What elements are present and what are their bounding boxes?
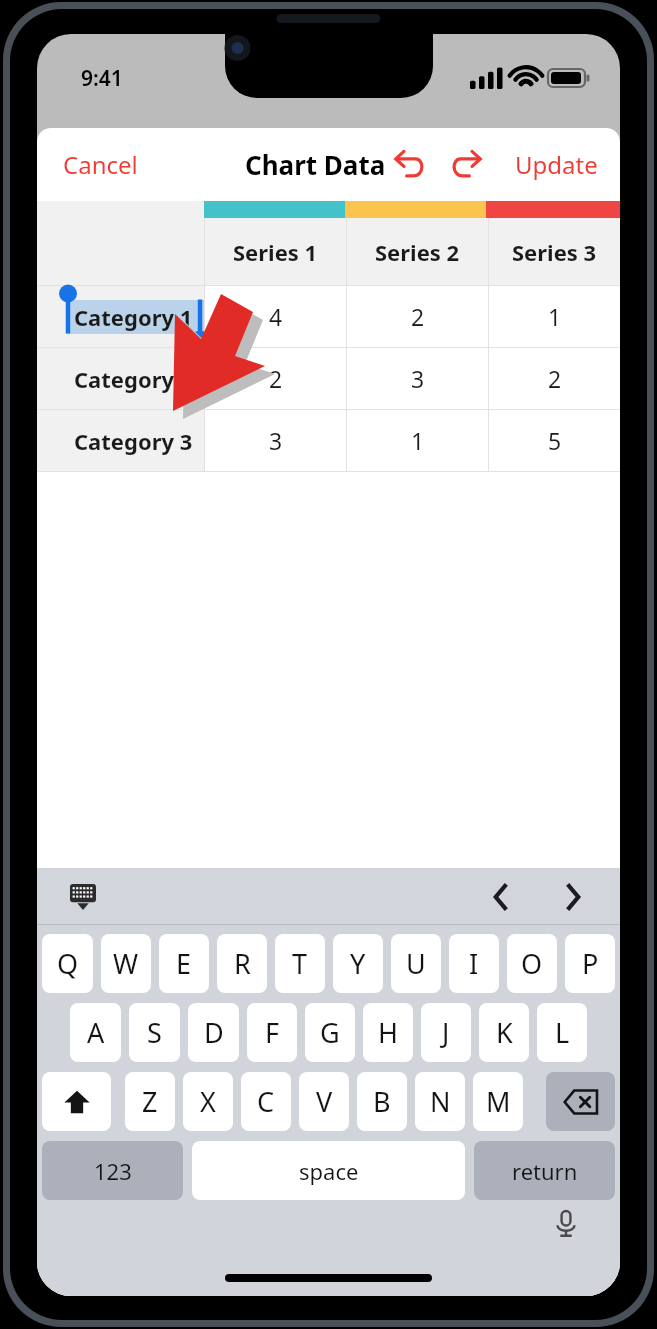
staticText: Cancel: [63, 148, 138, 181]
staticText: 1: [411, 425, 425, 456]
button[interactable]: H: [363, 1003, 413, 1062]
staticText: I: [469, 945, 479, 982]
staticText: W: [113, 945, 139, 982]
button[interactable]: E: [159, 934, 209, 993]
button[interactable]: I: [449, 934, 499, 993]
staticText: space: [299, 1156, 359, 1186]
staticText: V: [316, 1083, 333, 1120]
staticText: Category 3: [74, 426, 193, 456]
button[interactable]: Series 1: [205, 218, 346, 285]
button[interactable]: N: [415, 1072, 465, 1131]
staticText: 1: [548, 301, 562, 332]
staticText: Category 1: [74, 302, 193, 332]
button[interactable]: B: [357, 1072, 407, 1131]
staticText: 5: [548, 425, 562, 456]
button[interactable]: Y: [333, 934, 383, 993]
button[interactable]: U: [391, 934, 441, 993]
button[interactable]: L: [537, 1003, 587, 1062]
button[interactable]: P: [565, 934, 615, 993]
staticText: Chart Data: [245, 147, 386, 182]
staticText: T: [292, 945, 308, 982]
button[interactable]: Dictation: [544, 1202, 588, 1246]
staticText: B: [373, 1083, 391, 1120]
button[interactable]: Category 3: [62, 410, 204, 471]
staticText: H: [378, 1014, 399, 1051]
button[interactable]: space: [192, 1141, 465, 1200]
staticText: D: [204, 1014, 224, 1051]
staticText: Y: [350, 945, 366, 982]
staticText: 2: [411, 301, 425, 332]
button[interactable]: T: [275, 934, 325, 993]
staticText: L: [555, 1014, 570, 1051]
staticText: C: [257, 1083, 275, 1120]
staticText: Series 3: [512, 237, 597, 267]
button[interactable]: 3: [347, 348, 488, 409]
staticText: Category 2: [74, 364, 193, 394]
button[interactable]: Z: [125, 1072, 175, 1131]
staticText: P: [582, 945, 599, 982]
button[interactable]: D: [188, 1003, 239, 1062]
button[interactable]: A: [70, 1003, 121, 1062]
button[interactable]: X: [183, 1072, 233, 1131]
button[interactable]: Cancel: [37, 138, 164, 191]
staticText: A: [87, 1014, 105, 1051]
button[interactable]: Previous field: [478, 874, 524, 920]
button[interactable]: 2: [489, 348, 620, 409]
staticText: Update: [515, 148, 598, 181]
button[interactable]: Series 3: [489, 218, 620, 285]
button[interactable]: S: [129, 1003, 180, 1062]
staticText: Q: [57, 945, 79, 982]
button[interactable]: Next field: [550, 874, 596, 920]
button[interactable]: 5: [489, 410, 620, 471]
staticText: S: [147, 1014, 162, 1051]
staticText: N: [430, 1083, 451, 1120]
button[interactable]: Shift: [42, 1072, 111, 1131]
staticText: J: [442, 1014, 450, 1051]
button[interactable]: return: [474, 1141, 615, 1200]
button[interactable]: O: [507, 934, 557, 993]
button[interactable]: C: [241, 1072, 291, 1131]
staticText: O: [521, 945, 543, 982]
staticText: 2: [269, 363, 283, 394]
staticText: X: [200, 1083, 216, 1120]
staticText: G: [320, 1014, 340, 1051]
staticText: K: [496, 1014, 513, 1051]
button[interactable]: Q: [42, 934, 93, 993]
button[interactable]: G: [305, 1003, 355, 1062]
button[interactable]: Category 2: [62, 348, 204, 409]
button[interactable]: 123: [42, 1141, 183, 1200]
staticText: 3: [269, 425, 283, 456]
button[interactable]: Delete: [546, 1072, 615, 1131]
button[interactable]: Undo: [383, 140, 433, 190]
button[interactable]: 1: [489, 286, 620, 347]
staticText: Z: [142, 1083, 158, 1120]
button[interactable]: M: [473, 1072, 523, 1131]
button[interactable]: F: [247, 1003, 297, 1062]
staticText: Series 2: [375, 237, 460, 267]
button[interactable]: 3: [205, 410, 346, 471]
button[interactable]: 2: [205, 348, 346, 409]
staticText: E: [176, 945, 192, 982]
staticText: 123: [94, 1156, 132, 1186]
staticText: return: [512, 1156, 578, 1186]
button[interactable]: Category 1: [62, 286, 204, 347]
staticText: M: [486, 1083, 511, 1120]
staticText: 3: [411, 363, 425, 394]
button[interactable]: V: [299, 1072, 349, 1131]
button[interactable]: Hide keyboard: [63, 877, 103, 917]
button[interactable]: 1: [347, 410, 488, 471]
button[interactable]: 4: [205, 286, 346, 347]
button[interactable]: W: [101, 934, 151, 993]
button[interactable]: K: [479, 1003, 529, 1062]
staticText: 4: [269, 301, 283, 332]
staticText: R: [234, 945, 251, 982]
button[interactable]: 2: [347, 286, 488, 347]
button[interactable]: J: [421, 1003, 471, 1062]
button[interactable]: Series 2: [347, 218, 488, 285]
button[interactable]: Update: [493, 138, 620, 191]
staticText: Series 1: [233, 237, 318, 267]
button[interactable]: R: [217, 934, 267, 993]
staticText: 9:41: [81, 64, 123, 93]
button[interactable]: Redo: [443, 140, 493, 190]
